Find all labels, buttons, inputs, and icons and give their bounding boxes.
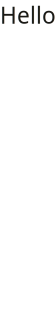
staticText: Hello: [0, 0, 56, 30]
